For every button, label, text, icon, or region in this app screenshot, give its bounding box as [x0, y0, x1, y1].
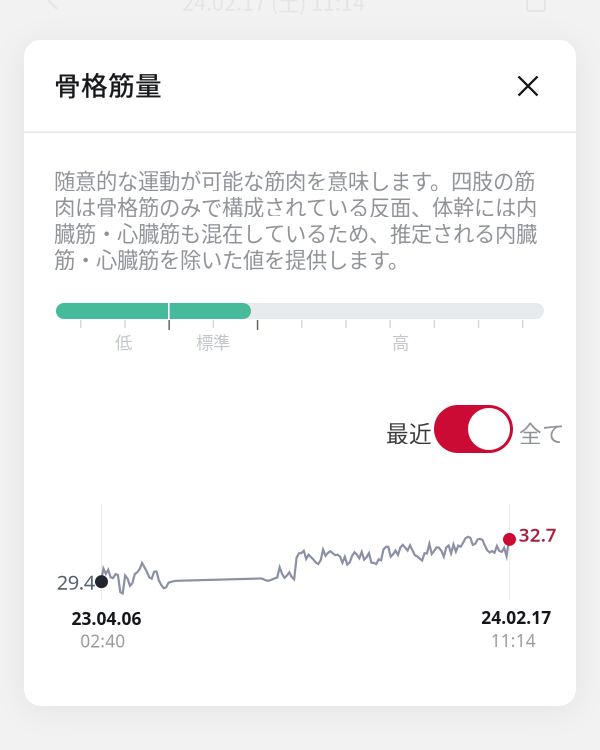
staticText: 骨格筋量 [54, 65, 162, 103]
staticText: 02:40 [80, 629, 125, 652]
staticText: 高 [392, 329, 409, 354]
staticText: 随意的な運動が可能な筋肉を意味します。四肢の筋肉は骨格筋のみで構成されている反面… [54, 167, 537, 271]
button[interactable]: 閉じる [500, 58, 556, 114]
staticText: 32.7 [519, 522, 557, 547]
staticText: 最近 [386, 416, 432, 449]
staticText: 29.4 [57, 569, 95, 595]
staticText: 24.02.17 [481, 606, 551, 629]
button[interactable]: 期間を切り替え [434, 405, 513, 453]
staticText: 標準 [196, 329, 230, 354]
staticText: 全て [519, 416, 565, 449]
staticText: 11:14 [491, 629, 536, 652]
staticText: 23.04.06 [71, 607, 141, 630]
staticText: 低 [115, 329, 132, 354]
staticText: 24.02.17 (土) 11:14 [182, 0, 365, 17]
